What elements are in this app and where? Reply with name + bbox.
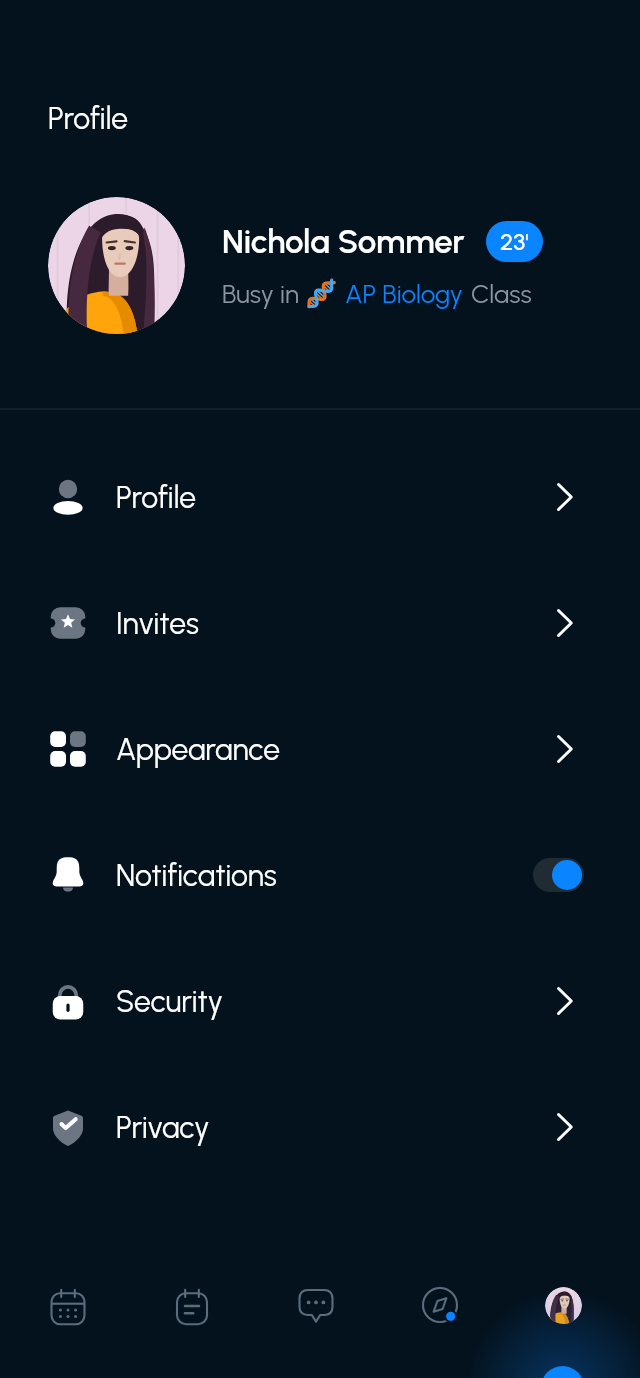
button[interactable]: Toggle notifications: [533, 858, 584, 892]
button[interactable]: Messages: [272, 1261, 360, 1349]
staticText: Appearance: [116, 731, 281, 767]
staticText: Invites: [116, 605, 199, 641]
staticText: AP Biology: [345, 278, 463, 309]
button[interactable]: Notifications: [0, 812, 640, 938]
button[interactable]: Your profile: [519, 1261, 607, 1349]
button[interactable]: Create new: [541, 1366, 584, 1378]
staticText: Privacy: [116, 1109, 210, 1145]
staticText: Busy in: [222, 278, 299, 309]
staticText: Security: [116, 983, 223, 1019]
button[interactable]: Agenda: [148, 1261, 236, 1349]
staticText: Profile: [116, 479, 196, 515]
button[interactable]: Security: [0, 938, 640, 1064]
button[interactable]: Appearance: [0, 686, 640, 812]
button[interactable]: Calendar: [24, 1261, 112, 1349]
button[interactable]: Explore: [396, 1261, 484, 1349]
staticText: Class: [471, 278, 532, 309]
staticText: 23': [500, 227, 529, 256]
button[interactable]: Invites: [0, 560, 640, 686]
staticText: Nichola Sommer: [222, 222, 465, 262]
staticText: Profile: [48, 100, 128, 136]
staticText: Notifications: [116, 857, 277, 893]
button[interactable]: Profile: [0, 434, 640, 560]
button[interactable]: Privacy: [0, 1064, 640, 1190]
